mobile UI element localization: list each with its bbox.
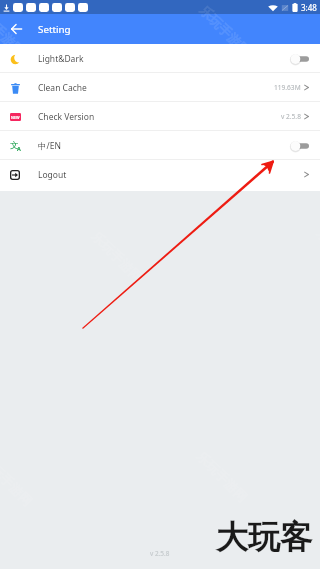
staticText: Light&Dark: [38, 53, 84, 65]
staticText: Clean Cache: [38, 82, 87, 94]
staticText: 大玩客: [216, 517, 312, 557]
button[interactable]: Back: [6, 19, 26, 39]
staticText: 119.63M: [274, 83, 301, 92]
button[interactable]: NEW: [0, 102, 320, 131]
button[interactable]: Toggle: [292, 52, 309, 66]
staticText: v 2.5.8: [281, 112, 301, 121]
button[interactable]: Clean Cache: [0, 73, 320, 102]
button[interactable]: Light&Dark: [0, 44, 320, 73]
staticText: A: [17, 145, 21, 152]
button[interactable]: Logout: [0, 160, 320, 189]
staticText: 中/EN: [38, 140, 61, 152]
staticText: 3:48: [301, 2, 317, 13]
staticText: Setting: [38, 23, 71, 36]
staticText: v 2.5.8: [150, 549, 170, 558]
button[interactable]: 文: [0, 131, 320, 160]
staticText: Check Version: [38, 111, 95, 123]
staticText: Logout: [38, 169, 67, 181]
staticText: 文: [10, 140, 19, 151]
button[interactable]: Toggle: [292, 139, 309, 153]
staticText: NEW: [11, 115, 20, 120]
